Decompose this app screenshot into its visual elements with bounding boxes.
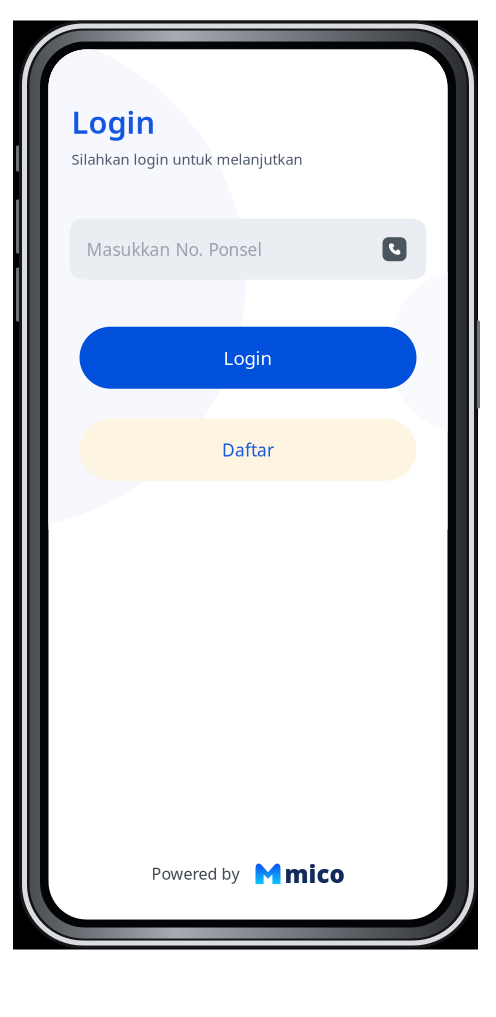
button[interactable]: Daftar (79, 419, 416, 481)
button[interactable]: Login (79, 327, 416, 389)
staticText: Masukkan No. Ponsel (86, 238, 261, 261)
staticText: Daftar (222, 438, 274, 461)
staticText: mico (284, 858, 344, 889)
staticText: Silahkan login untuk melanjutkan (71, 149, 302, 169)
staticText: Powered by (151, 863, 239, 884)
staticText: Login (71, 101, 155, 142)
staticText: Login (223, 345, 272, 370)
